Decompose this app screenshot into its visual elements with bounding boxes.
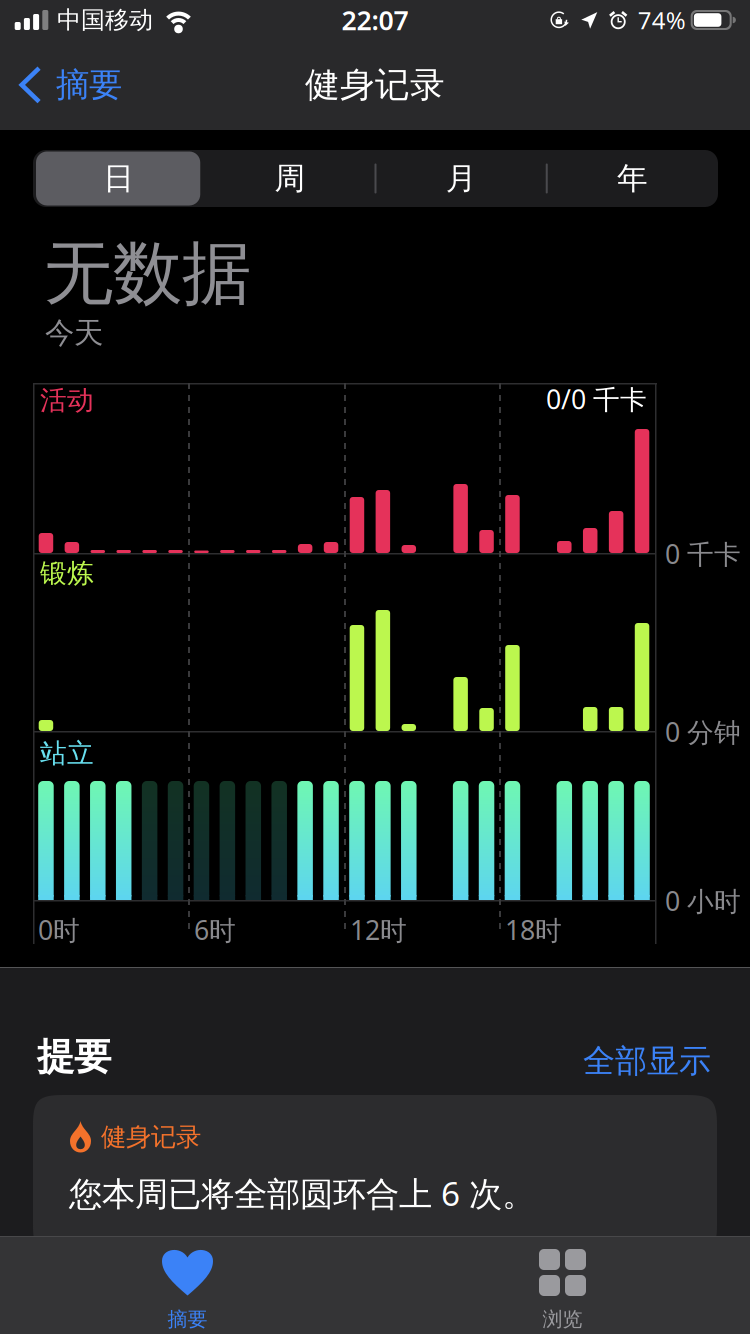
button[interactable]: 摘要 [0,1236,375,1334]
staticText: 0 千卡 [665,536,741,571]
button[interactable]: 摘要 [0,40,136,130]
staticText: 摘要 [56,64,122,105]
button[interactable]: 周 [204,150,375,207]
staticText: 0/0 千卡 [546,381,647,417]
staticText: 0 小时 [665,883,741,918]
staticText: 锻炼 [40,557,94,590]
staticText: 0时 [38,912,80,947]
staticText: 年 [617,160,648,197]
staticText: 18时 [505,912,562,947]
staticText: 活动 [40,384,94,417]
staticText: 74% [638,4,686,36]
staticText: 浏览 [542,1307,582,1332]
staticText: 月 [446,160,477,197]
staticText: 摘要 [167,1307,207,1332]
staticText: 12时 [350,912,407,947]
button[interactable]: 健身记录 [33,1095,717,1255]
staticText: 健身记录 [305,64,445,106]
staticText: 日 [103,160,134,197]
staticText: 全部显示 [583,1041,711,1081]
button[interactable]: 年 [547,150,718,207]
button[interactable]: 全部显示 [571,1036,711,1086]
staticText: 22:07 [341,2,408,38]
staticText: 0 分钟 [665,714,741,749]
staticText: 无数据 [44,231,251,316]
staticText: 周 [274,160,305,197]
staticText: 健身记录 [101,1121,201,1152]
button[interactable]: 浏览 [375,1236,750,1334]
staticText: 您本周已将全部圆环合上 6 次。 [69,1171,535,1215]
staticText: 站立 [40,737,94,770]
staticText: 中国移动 [57,5,153,35]
button[interactable]: 月 [375,150,547,207]
staticText: 6时 [194,912,236,947]
button[interactable]: 日 [33,150,204,207]
staticText: 今天 [45,315,103,351]
staticText: 提要 [37,1034,111,1080]
